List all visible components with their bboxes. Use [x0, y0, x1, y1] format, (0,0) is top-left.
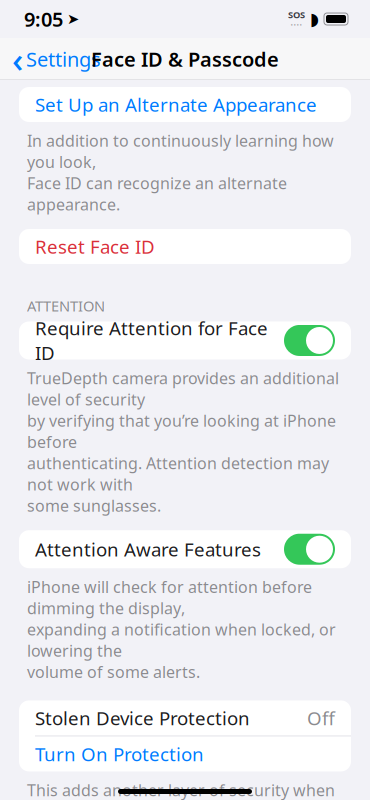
staticText: ATTENTION — [27, 296, 105, 315]
staticText: 9:05 — [24, 6, 63, 32]
staticText: ➤ — [67, 11, 79, 27]
staticText: TrueDepth camera provides an additional … — [27, 367, 339, 516]
staticText: Face ID & Passcode — [91, 46, 279, 72]
staticText: ◗ — [310, 9, 319, 29]
staticText: This adds another layer of security when… — [27, 779, 341, 800]
button[interactable]: Stolen Device Protection — [19, 700, 351, 735]
button[interactable]: Reset Face ID — [19, 229, 351, 264]
button[interactable]: Set Up an Alternate Appearance — [19, 87, 351, 122]
staticText: •••• — [290, 21, 302, 30]
staticText: Attention Aware Features — [35, 537, 261, 562]
staticText: Settings — [26, 46, 101, 72]
staticText: Set Up an Alternate Appearance — [35, 92, 317, 117]
staticText: ‹ — [12, 36, 23, 82]
staticText: Stolen Device Protection — [35, 706, 250, 730]
staticText: In addition to continuously learning how… — [27, 130, 334, 215]
staticText: Off — [307, 706, 335, 730]
button[interactable]: Turn On Protection — [19, 736, 351, 771]
staticText: Require Attention for Face ID — [35, 316, 268, 365]
button[interactable]: Attention Aware Features — [284, 534, 335, 565]
staticText: SOS — [288, 8, 305, 21]
button[interactable]: Require Attention for Face ID — [284, 325, 335, 356]
staticText: Reset Face ID — [35, 234, 155, 259]
button[interactable]: ‹ — [0, 36, 109, 82]
staticText: Turn On Protection — [35, 742, 204, 766]
staticText: iPhone will check for attention before d… — [27, 576, 336, 682]
